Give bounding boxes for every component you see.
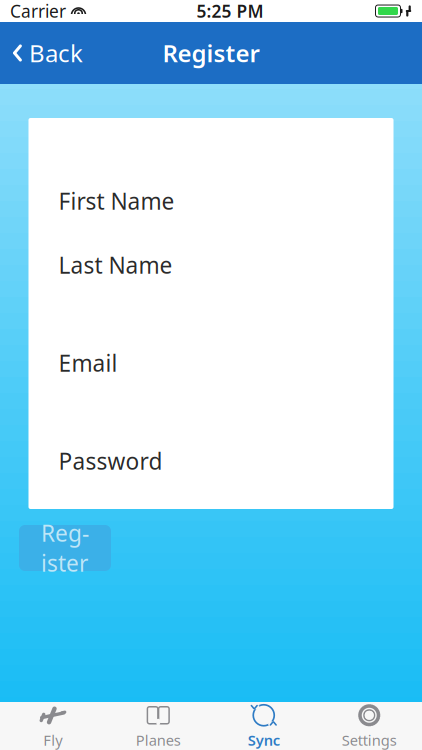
staticText: First Name	[58, 186, 174, 216]
button[interactable]: Settings	[316, 702, 422, 750]
staticText: Sync	[248, 730, 280, 750]
button[interactable]: Email	[28, 314, 393, 412]
staticText: Carrier	[10, 0, 66, 22]
staticText: Back	[29, 37, 83, 69]
staticText: Register	[162, 37, 259, 69]
staticText: Settings	[342, 730, 397, 750]
staticText: Last Name	[58, 250, 172, 280]
button[interactable]: Back	[0, 31, 97, 75]
staticText: Password	[58, 446, 162, 476]
button[interactable]: Last Name	[28, 216, 393, 314]
staticText: Email	[58, 348, 117, 378]
button[interactable]: Sync	[211, 702, 316, 750]
staticText: 5:25 PM	[196, 0, 263, 22]
button[interactable]: Password	[28, 412, 393, 510]
button[interactable]: Fly	[0, 702, 105, 750]
button[interactable]: Planes	[105, 702, 211, 750]
staticText: Register	[41, 518, 89, 578]
button[interactable]: Register	[19, 525, 111, 571]
staticText: Planes	[136, 730, 181, 750]
button[interactable]: First Name	[28, 118, 393, 216]
staticText: Fly	[43, 730, 62, 750]
